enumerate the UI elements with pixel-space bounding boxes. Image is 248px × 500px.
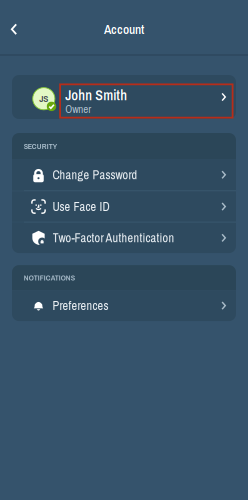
button[interactable]: Change Password: [12, 159, 236, 190]
staticText: Two-Factor Authentication: [52, 230, 174, 246]
button[interactable]: Preferences: [12, 290, 236, 321]
button[interactable]: Use Face ID: [12, 191, 236, 222]
staticText: Account: [104, 21, 144, 38]
staticText: SECURITY: [24, 141, 57, 151]
staticText: John Smith: [65, 86, 127, 105]
button[interactable]: JS: [12, 75, 236, 119]
staticText: NOTIFICATIONS: [24, 272, 75, 283]
button[interactable]: Back: [0, 14, 28, 44]
staticText: Preferences: [52, 297, 108, 314]
staticText: JS: [39, 92, 48, 105]
staticText: Owner: [65, 102, 91, 116]
staticText: Change Password: [52, 166, 137, 183]
staticText: Use Face ID: [52, 198, 109, 215]
button[interactable]: Two-Factor Authentication: [12, 223, 236, 253]
